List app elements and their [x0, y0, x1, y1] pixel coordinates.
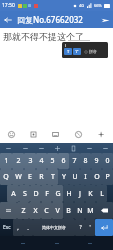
button[interactable]: C: [41, 202, 52, 219]
staticText: Y: [62, 172, 66, 182]
button[interactable]: Backspace: [96, 202, 113, 219]
staticText: P: [105, 172, 110, 182]
staticText: Esc: [3, 224, 11, 231]
button[interactable]: Y: [58, 169, 69, 185]
button[interactable]: T: [47, 169, 58, 185]
button[interactable]: Shift: [0, 202, 17, 219]
staticText: 7: [72, 156, 77, 166]
button[interactable]: T: [62, 42, 108, 58]
button[interactable]: J: [74, 185, 85, 202]
button[interactable]: O: [91, 169, 102, 185]
staticText: 6: [61, 156, 66, 166]
button[interactable]: ,: [13, 219, 23, 236]
staticText: 4: [39, 156, 44, 166]
button[interactable]: 9: [91, 153, 102, 169]
button[interactable]: A: [7, 185, 19, 202]
button[interactable]: Home: [47, 237, 67, 249]
staticText: J: [79, 189, 81, 199]
button[interactable]: Recents: [80, 237, 100, 249]
button[interactable]: I: [80, 169, 91, 185]
button[interactable]: Emoji: [0, 125, 22, 143]
button[interactable]: S: [19, 185, 30, 202]
staticText: T: [67, 49, 70, 54]
staticText: K: [88, 189, 93, 199]
button[interactable]: Back: [0, 12, 16, 28]
button[interactable]: Enter: [95, 219, 113, 236]
staticText: S: [23, 189, 27, 199]
button[interactable]: W: [12, 169, 24, 185]
button[interactable]: Undo: [17, 143, 33, 153]
staticText: G: [55, 189, 61, 199]
button[interactable]: Q: [0, 169, 12, 185]
button[interactable]: 简体中文拼音: [33, 219, 75, 236]
staticText: R: [39, 172, 44, 182]
staticText: A: [11, 189, 16, 199]
staticText: 那就不得不提这个了: [3, 31, 84, 42]
button[interactable]: Hide keyboard: [97, 143, 113, 153]
button[interactable]: R: [36, 169, 47, 185]
button[interactable]: 8: [80, 153, 91, 169]
staticText: M: [87, 206, 94, 216]
button[interactable]: 0: [102, 153, 113, 169]
staticText: U: [72, 172, 78, 182]
button[interactable]: Clipboard: [65, 143, 81, 153]
button[interactable]: Back: [13, 237, 33, 249]
button[interactable]: 2: [12, 153, 24, 169]
staticText: ,: [17, 224, 19, 232]
staticText: I: [84, 172, 87, 182]
staticText: T: [51, 172, 55, 182]
staticText: 8: [83, 156, 88, 166]
staticText: V: [55, 206, 60, 216]
button[interactable]: 3: [24, 153, 36, 169]
button[interactable]: Photo: [44, 125, 67, 143]
staticText: 简体中文拼音: [42, 225, 66, 230]
button[interactable]: M: [85, 202, 96, 219]
staticText: .: [27, 224, 29, 232]
button[interactable]: N: [74, 202, 85, 219]
button[interactable]: U: [69, 169, 80, 185]
staticText: 4G: [79, 3, 85, 8]
button[interactable]: G: [52, 185, 63, 202]
button[interactable]: 1: [0, 153, 12, 169]
button[interactable]: E: [24, 169, 36, 185]
staticText: F: [45, 189, 49, 199]
button[interactable]: ': [85, 219, 95, 236]
staticText: H: [66, 189, 72, 199]
staticText: ': [89, 224, 91, 231]
button[interactable]: X: [29, 202, 41, 219]
staticText: E: [28, 172, 32, 182]
button[interactable]: B: [63, 202, 74, 219]
button[interactable]: D: [30, 185, 41, 202]
button[interactable]: Settings: [81, 143, 97, 153]
staticText: Z: [21, 206, 26, 216]
button[interactable]: 5: [47, 153, 58, 169]
button[interactable]: H: [63, 185, 74, 202]
button[interactable]: K: [85, 185, 96, 202]
button[interactable]: 6: [58, 153, 69, 169]
button[interactable]: Esc: [0, 219, 13, 236]
button[interactable]: P: [102, 169, 113, 185]
staticText: ?: [79, 224, 82, 231]
button[interactable]: Z: [17, 202, 29, 219]
staticText: 0: [105, 156, 110, 166]
button[interactable]: Previous: [0, 143, 17, 153]
staticText: 3: [28, 156, 33, 166]
staticText: 9: [94, 156, 99, 166]
button[interactable]: Redo: [33, 143, 49, 153]
button[interactable]: Image: [22, 125, 44, 143]
button[interactable]: ?: [75, 219, 85, 236]
staticText: C: [44, 206, 49, 216]
button[interactable]: Move cursor: [49, 143, 65, 153]
staticText: 2: [16, 156, 21, 166]
button[interactable]: 4: [36, 153, 47, 169]
button[interactable]: F: [41, 185, 52, 202]
button[interactable]: L: [96, 185, 107, 202]
button[interactable]: Add: [90, 125, 113, 143]
staticText: 5: [50, 156, 55, 166]
button[interactable]: 7: [69, 153, 80, 169]
button[interactable]: Send: [97, 12, 113, 28]
button[interactable]: .: [23, 219, 33, 236]
button[interactable]: V: [52, 202, 63, 219]
button[interactable]: Sticker: [67, 125, 90, 143]
staticText: 拼音: [89, 49, 97, 54]
